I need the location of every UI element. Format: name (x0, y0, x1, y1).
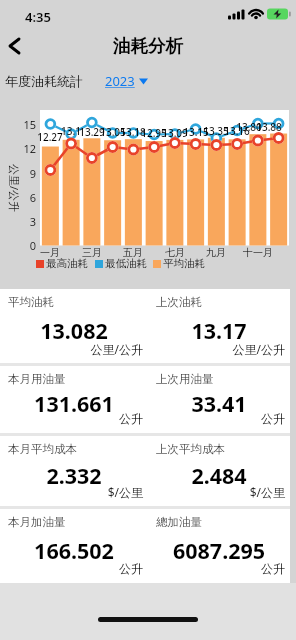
staticText: 13.05 (96, 125, 130, 139)
button[interactable]: 上次用油量 (148, 366, 290, 433)
staticText: 平均油耗 (163, 257, 205, 270)
staticText: $/公里 (0, 484, 143, 500)
staticText: 13.17 (148, 316, 290, 345)
staticText: 13.18 (116, 125, 150, 139)
staticText: 13.1 (54, 124, 88, 138)
staticText: 上次用油量 (156, 372, 214, 386)
button[interactable]: 2023 (105, 71, 148, 90)
staticText: 本月用油量 (8, 372, 66, 386)
staticText: 上次油耗 (156, 295, 202, 309)
staticText: 最高油耗 (46, 257, 88, 270)
staticText: 12.27 (33, 130, 67, 144)
button[interactable]: 平均油耗 (0, 289, 148, 363)
staticText: 2023 (105, 72, 135, 90)
button[interactable]: 總加油量 (148, 509, 290, 583)
staticText: 十一月 (238, 246, 278, 259)
staticText: 平均油耗 (8, 295, 54, 309)
staticText: 公里/公升 (0, 341, 143, 357)
staticText: 本月加油量 (8, 515, 66, 529)
staticText: 131.661 (0, 389, 148, 418)
button[interactable]: 上次油耗 (148, 289, 290, 363)
button[interactable] (0, 28, 34, 64)
staticText: 總加油量 (156, 515, 202, 529)
staticText: 公里/公升 (8, 159, 22, 217)
staticText: 13.082 (0, 316, 148, 345)
staticText: 12 (4, 141, 36, 156)
staticText: 五月 (113, 246, 153, 259)
staticText: 13.15 (179, 125, 213, 139)
staticText: 9 (4, 166, 36, 181)
staticText: 166.502 (0, 536, 148, 565)
staticText: 九月 (196, 246, 236, 259)
staticText: 6087.295 (148, 536, 290, 565)
staticText: 公升 (0, 561, 143, 576)
staticText: 油耗分析 (113, 35, 183, 57)
staticText: 13.80 (232, 120, 266, 134)
staticText: 年度油耗統計 (5, 73, 83, 89)
button[interactable]: 本月平均成本 (0, 436, 148, 506)
staticText: 0 (4, 238, 36, 253)
staticText: 33.41 (148, 389, 290, 418)
staticText: 一月 (30, 246, 70, 259)
staticText: 6 (4, 190, 36, 205)
staticText: 2.332 (0, 461, 148, 490)
staticText: 三月 (72, 246, 112, 259)
staticText: 公升 (0, 411, 143, 426)
button[interactable]: 上次平均成本 (148, 436, 290, 506)
staticText: 13.88 (252, 120, 286, 134)
staticText: 七月 (155, 246, 195, 259)
staticText: 13.35 (199, 124, 233, 138)
staticText: 3 (4, 214, 36, 229)
staticText: 公升 (148, 411, 285, 426)
button[interactable]: 本月用油量 (0, 366, 148, 433)
staticText: 上次平均成本 (156, 442, 225, 456)
staticText: 12.95 (137, 126, 171, 140)
button[interactable]: 本月加油量 (0, 509, 148, 583)
staticText: 最低油耗 (105, 257, 147, 270)
staticText: 2.484 (148, 461, 290, 490)
staticText: 13.16 (220, 124, 254, 138)
staticText: 公升 (148, 561, 285, 576)
staticText: 公里/公升 (148, 341, 285, 357)
staticText: 13.09 (158, 126, 192, 140)
staticText: 4:35 (25, 8, 51, 26)
staticText: $/公里 (148, 484, 285, 500)
staticText: 15 (4, 117, 36, 132)
staticText: 13.29 (75, 125, 109, 139)
staticText: 本月平均成本 (8, 442, 77, 456)
